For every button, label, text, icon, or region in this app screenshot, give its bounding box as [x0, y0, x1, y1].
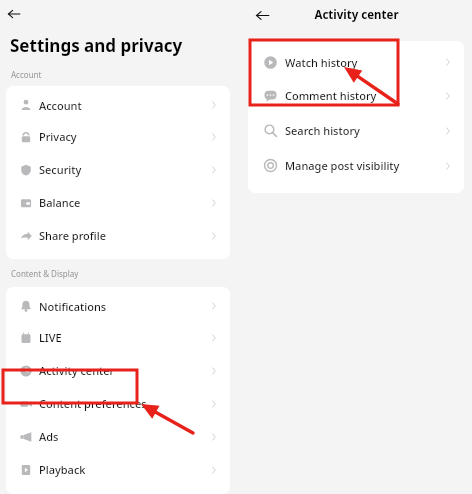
staticText: Content & Display: [11, 268, 79, 279]
button[interactable]: Search history: [248, 113, 464, 148]
staticText: Playback: [39, 462, 86, 477]
button[interactable]: LIVE: [6, 321, 230, 354]
button[interactable]: Notifications: [6, 291, 230, 321]
staticText: Balance: [39, 195, 81, 210]
button[interactable]: Comment history: [248, 78, 464, 113]
staticText: Settings and privacy: [10, 34, 183, 57]
button[interactable]: Security: [6, 153, 230, 186]
button[interactable]: Activity center: [6, 354, 230, 387]
button[interactable]: Watch history: [248, 46, 464, 78]
button[interactable]: Back: [5, 5, 23, 23]
staticText: Ads: [39, 429, 59, 444]
staticText: Security: [39, 162, 82, 177]
button[interactable]: Account: [6, 90, 230, 120]
staticText: Privacy: [39, 129, 77, 144]
staticText: LIVE: [39, 330, 62, 345]
staticText: Account: [39, 98, 82, 113]
button[interactable]: Content preferences: [6, 387, 230, 420]
staticText: Share profile: [39, 228, 106, 243]
staticText: Activity center: [39, 363, 115, 378]
button[interactable]: Ads: [6, 420, 230, 453]
staticText: Activity center: [314, 7, 399, 23]
button[interactable]: Balance: [6, 186, 230, 219]
staticText: Content preferences: [39, 396, 147, 411]
button[interactable]: Playback: [6, 453, 230, 486]
staticText: Watch history: [285, 55, 358, 70]
staticText: Account: [11, 69, 42, 80]
button[interactable]: Share profile: [6, 219, 230, 252]
staticText: Manage post visibility: [285, 158, 400, 173]
staticText: Search history: [285, 123, 360, 138]
staticText: Notifications: [39, 299, 107, 314]
button[interactable]: Manage post visibility: [248, 148, 464, 183]
button[interactable]: Privacy: [6, 120, 230, 153]
button[interactable]: Back: [252, 5, 272, 25]
staticText: Comment history: [285, 88, 377, 103]
